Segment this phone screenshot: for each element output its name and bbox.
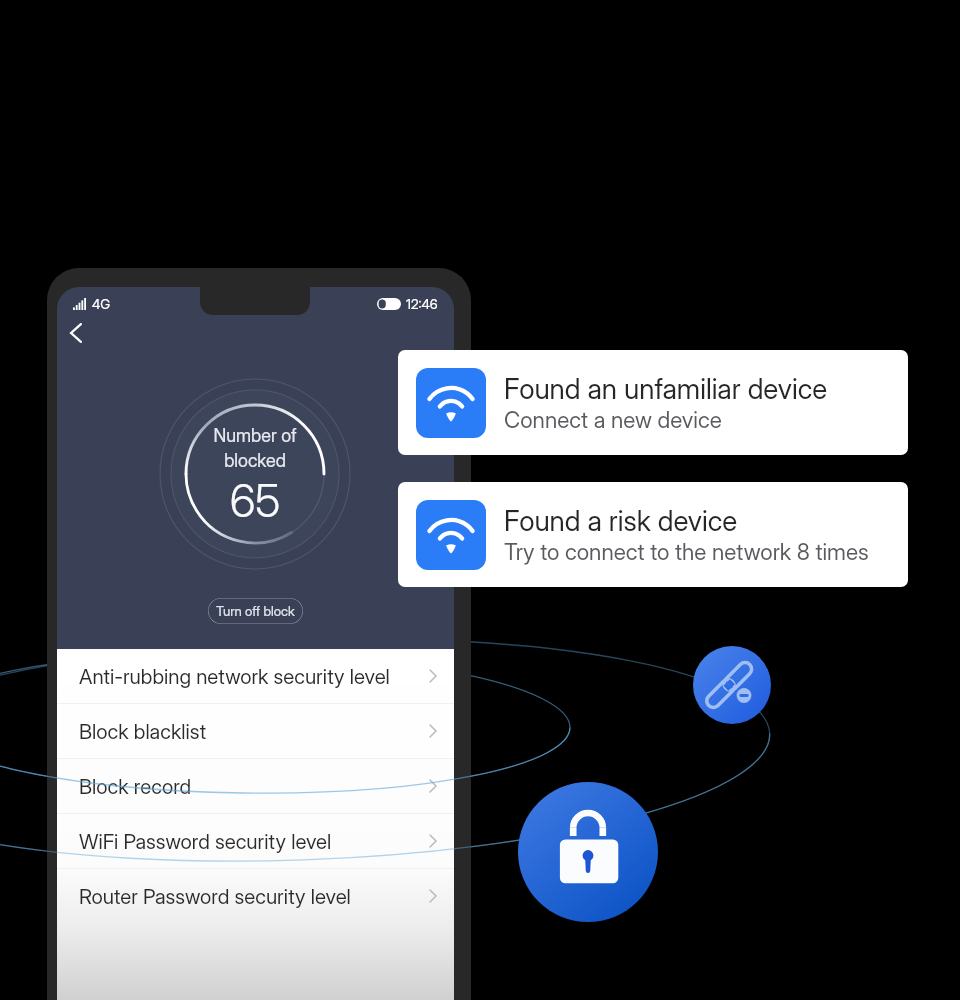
staticText: Router Password security level: [79, 884, 351, 909]
staticText: Found an unfamiliar device: [504, 372, 828, 406]
button[interactable]: WiFi Password security level: [57, 814, 454, 868]
button[interactable]: Found a risk device: [398, 482, 908, 587]
button[interactable]: Back: [57, 311, 98, 355]
staticText: Connect a new device: [504, 406, 722, 433]
staticText: Anti-rubbing network security level: [79, 664, 390, 689]
staticText: Number of blocked: [213, 425, 297, 471]
button[interactable]: Turn off block: [208, 598, 303, 624]
staticText: Block record: [79, 774, 192, 799]
staticText: Try to connect to the network 8 times: [504, 538, 869, 565]
button[interactable]: Security lock: [518, 782, 658, 922]
staticText: Found a risk device: [504, 504, 738, 538]
button[interactable]: Found an unfamiliar device: [398, 350, 908, 455]
staticText: Block blacklist: [79, 719, 207, 744]
button[interactable]: Disconnect link: [693, 646, 771, 724]
staticText: 4G: [92, 296, 111, 312]
staticText: Turn off block: [216, 603, 295, 619]
staticText: 65: [230, 473, 281, 527]
staticText: 12:46: [406, 296, 438, 312]
button[interactable]: Block blacklist: [57, 704, 454, 758]
button[interactable]: Anti-rubbing network security level: [57, 649, 454, 703]
staticText: WiFi Password security level: [79, 829, 332, 854]
button[interactable]: Router Password security level: [57, 869, 454, 923]
button[interactable]: Block record: [57, 759, 454, 813]
